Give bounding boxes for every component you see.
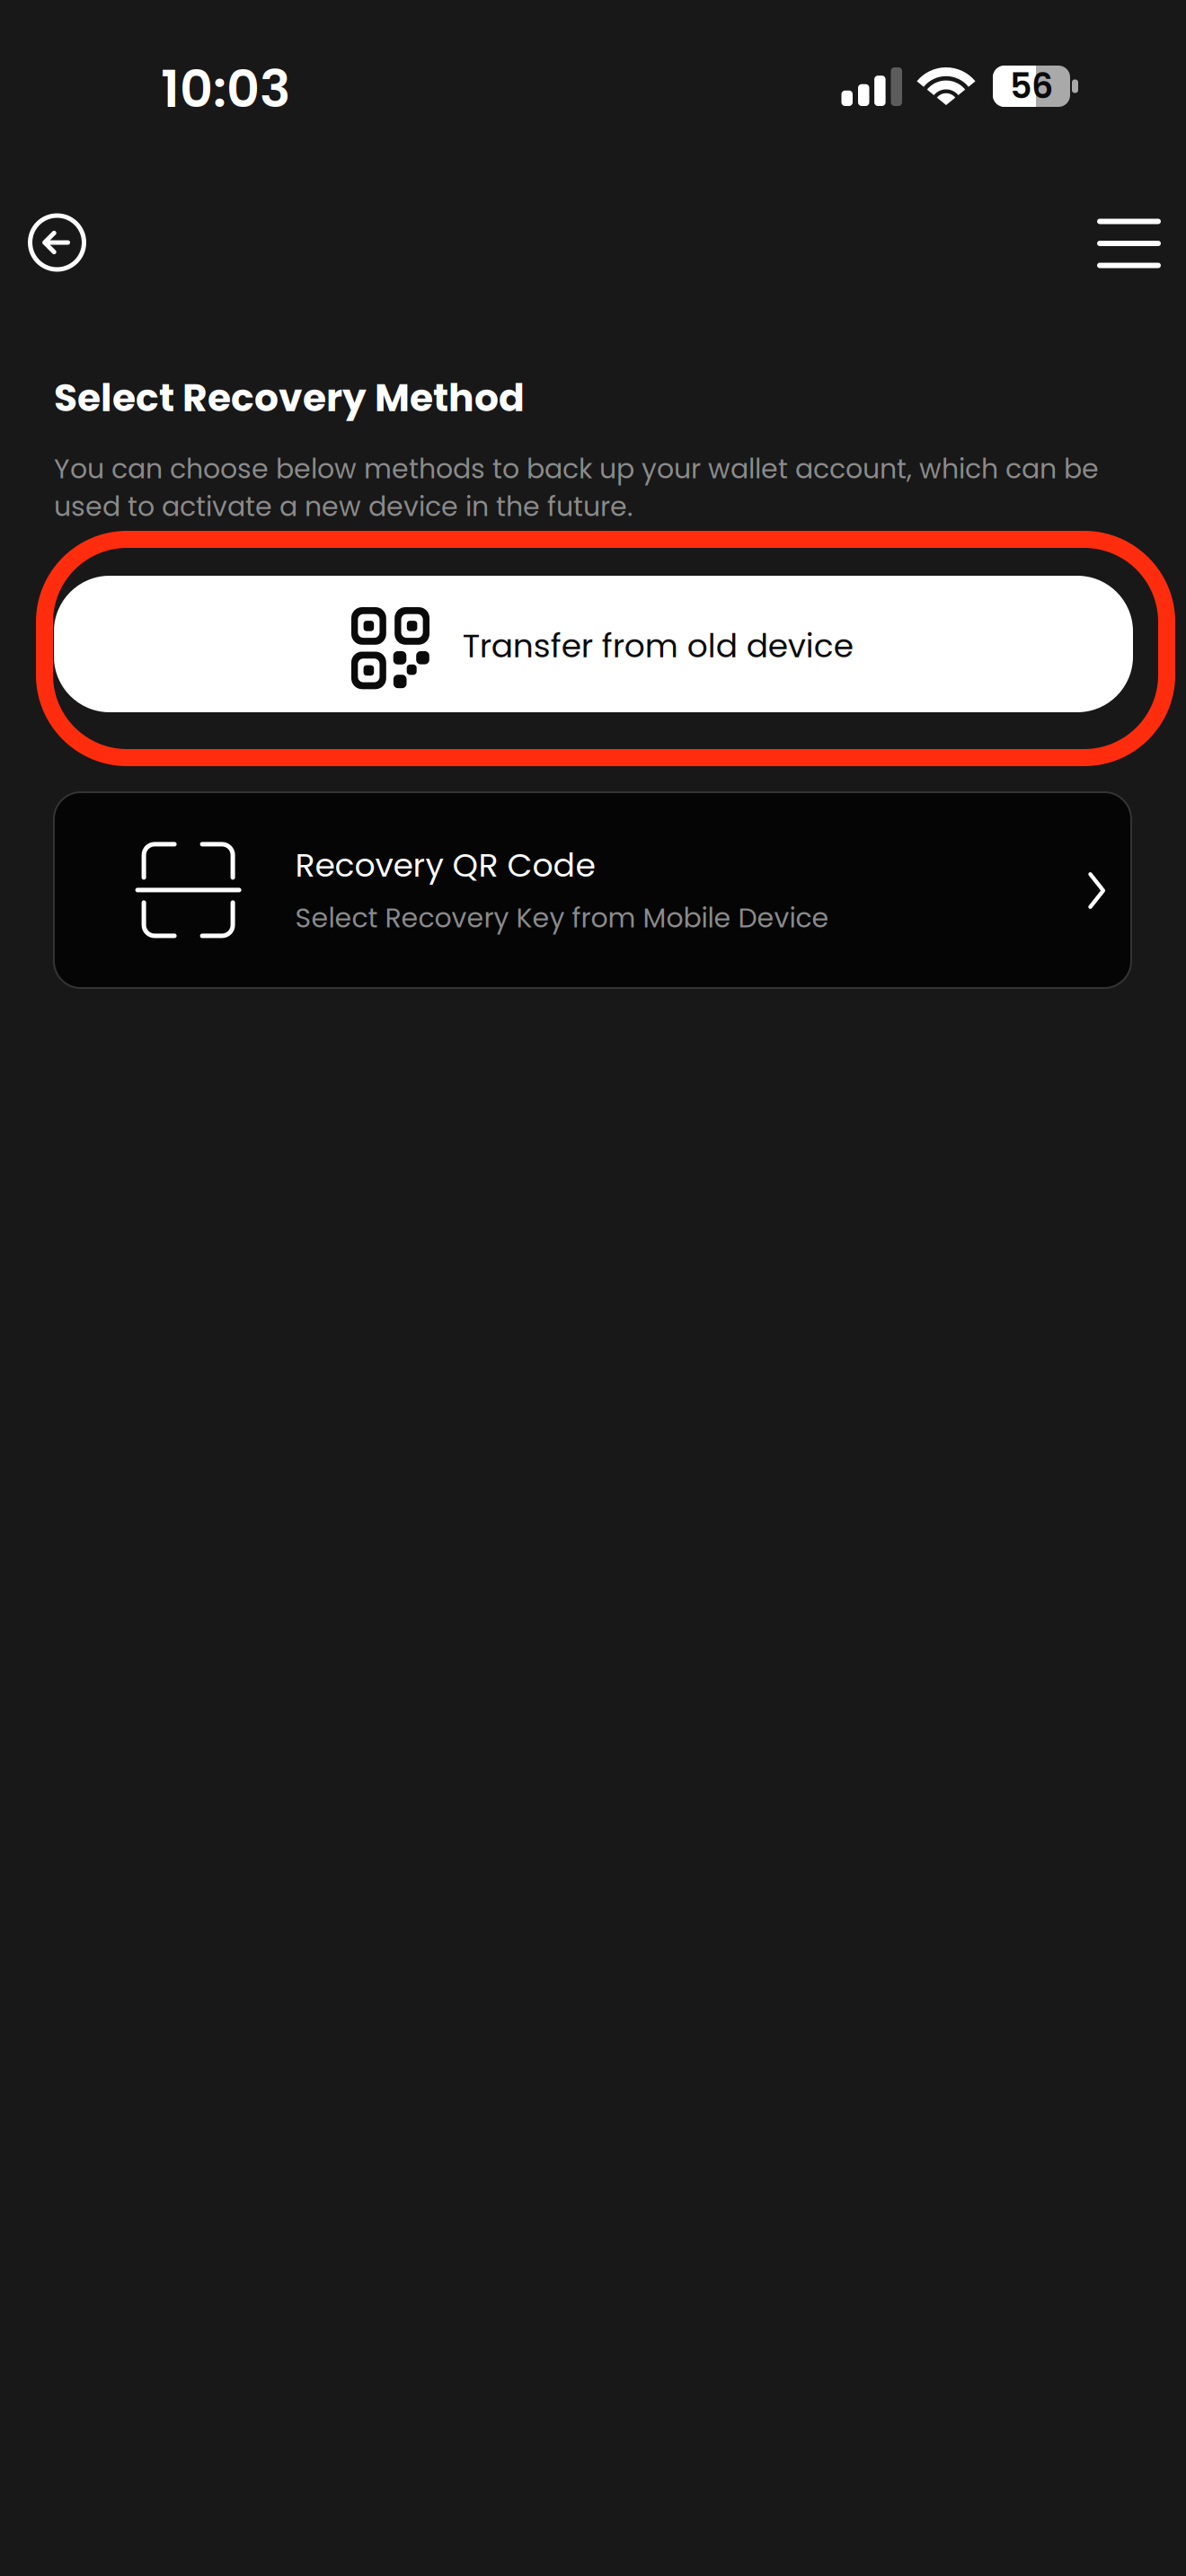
staticText: Select Recovery Key from Mobile Device (295, 899, 829, 937)
staticText: 10:03 (161, 53, 290, 125)
button[interactable]: Transfer from old device (54, 576, 1133, 712)
button[interactable]: Recovery QR Code (54, 792, 1131, 988)
staticText: 56 (1010, 62, 1053, 110)
staticText: You can choose below methods to back up … (54, 450, 1099, 525)
button[interactable]: Menu (1097, 219, 1161, 268)
staticText: Transfer from old device (463, 623, 853, 669)
button[interactable]: Back (28, 213, 86, 272)
staticText: Recovery QR Code (295, 842, 595, 888)
staticText: Select Recovery Method (54, 371, 525, 425)
